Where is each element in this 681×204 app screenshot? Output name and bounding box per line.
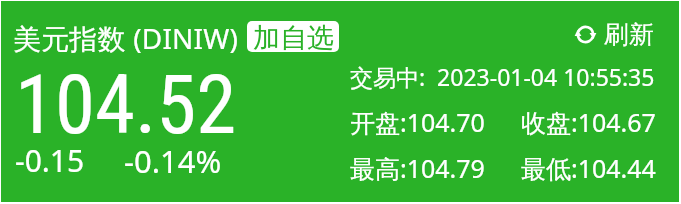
staticText: 交易中: 2023-01-04 10:55:35 [350, 61, 655, 92]
staticText: 收盘:104.67 [521, 105, 656, 139]
staticText: 最高:104.79 [350, 151, 485, 185]
button[interactable]: 美元指数 (DINIW) [1, 1, 679, 202]
staticText: -0.15 [15, 140, 85, 181]
staticText: 美元指数 (DINIW) [13, 19, 238, 57]
staticText: 最低:104.44 [521, 151, 656, 185]
staticText: 开盘:104.70 [350, 105, 485, 139]
staticText: 加自选 [253, 21, 334, 52]
other: Refresh [574, 23, 597, 46]
staticText: 刷新 [604, 19, 654, 50]
button[interactable]: 加自选 [247, 21, 339, 52]
button[interactable]: Refresh [574, 19, 654, 50]
staticText: 104.52 [15, 58, 237, 153]
staticText: -0.14% [124, 140, 222, 182]
